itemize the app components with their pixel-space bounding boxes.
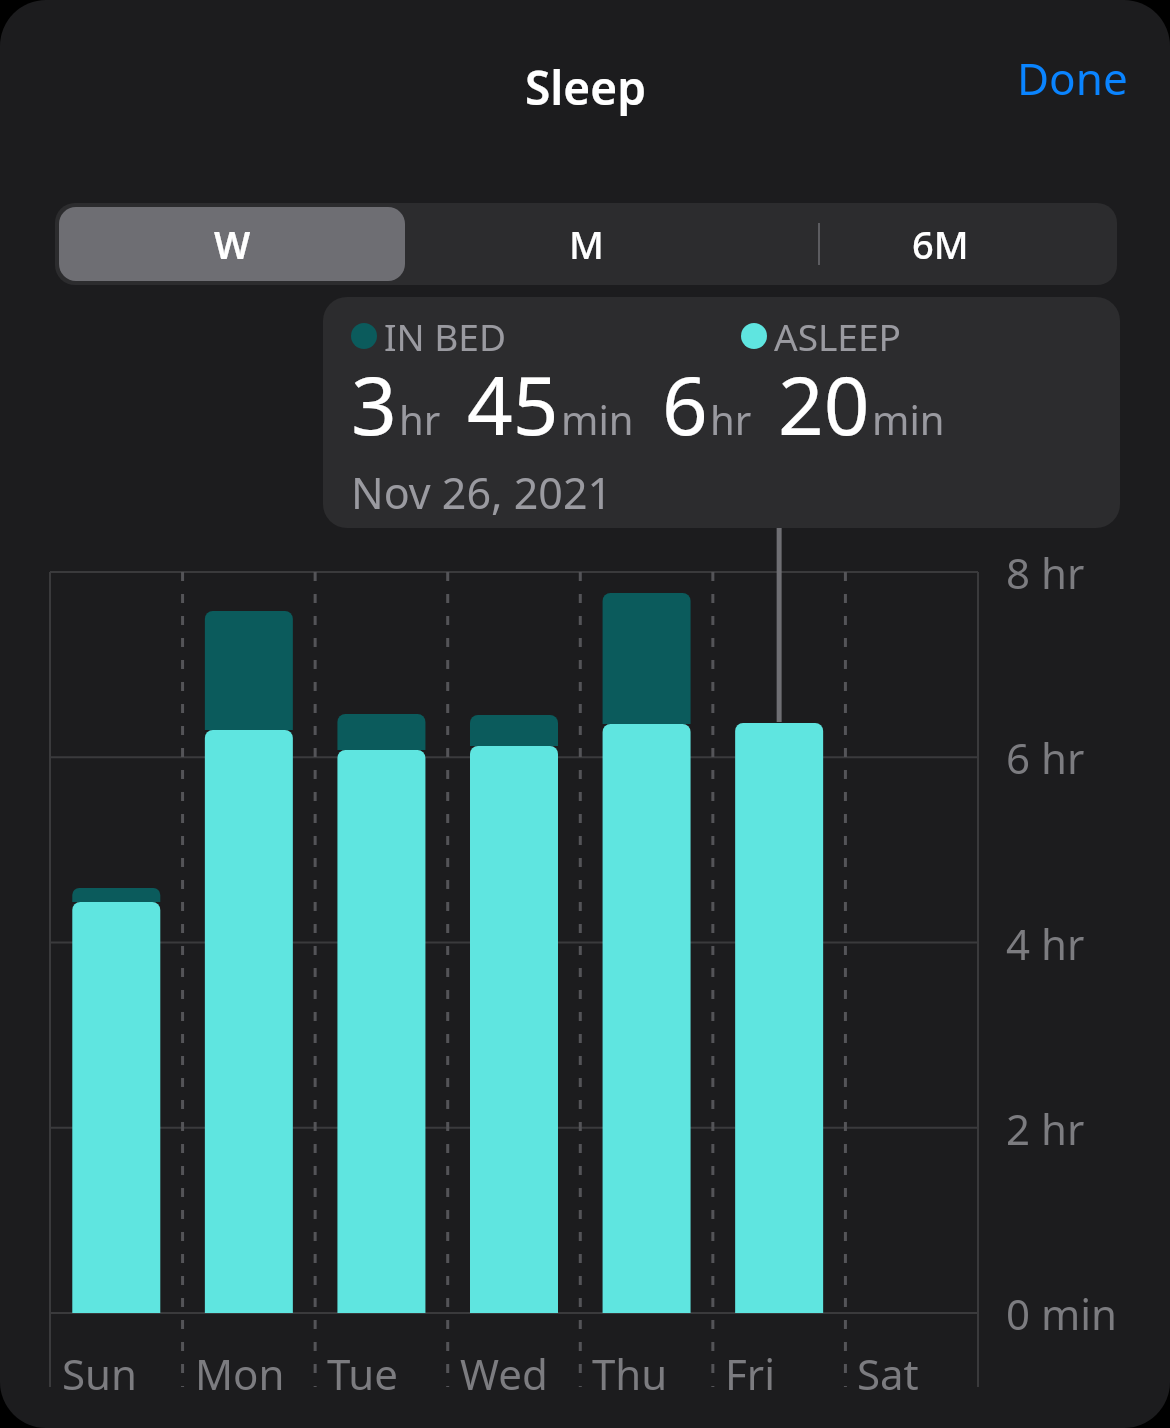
staticText: Fri	[725, 1345, 775, 1402]
staticText: IN BED	[384, 311, 506, 361]
staticText: 20	[778, 349, 870, 458]
staticText: hr	[710, 392, 752, 446]
staticText: Tue	[327, 1345, 398, 1402]
staticText: Sat	[857, 1345, 919, 1402]
staticText: 6	[662, 349, 708, 458]
staticText: Sun	[62, 1345, 137, 1402]
staticText: 6 hr	[1006, 729, 1085, 786]
staticText: 2 hr	[1006, 1100, 1085, 1157]
staticText: Nov 26, 2021	[351, 463, 613, 522]
button[interactable]: W	[59, 207, 405, 281]
staticText: 3	[351, 349, 397, 458]
staticText: Done	[1017, 48, 1128, 108]
staticText: min	[561, 392, 634, 446]
button[interactable]: IN BED	[323, 297, 1120, 528]
button[interactable]: M	[413, 207, 759, 281]
staticText: W	[214, 218, 251, 270]
staticText: M	[569, 218, 604, 270]
staticText: 45	[467, 349, 559, 458]
staticText: Thu	[592, 1345, 668, 1402]
staticText: ASLEEP	[774, 311, 901, 361]
staticText: min	[872, 392, 945, 446]
staticText: hr	[399, 392, 441, 446]
button[interactable]: Done	[1001, 36, 1144, 120]
staticText: Mon	[195, 1345, 285, 1402]
staticText: 0 min	[1006, 1285, 1118, 1342]
button[interactable]: 6M	[767, 207, 1113, 281]
staticText: 8 hr	[1006, 544, 1085, 601]
staticText: Sleep	[525, 56, 646, 119]
staticText: 4 hr	[1006, 915, 1085, 972]
staticText: Wed	[460, 1345, 548, 1402]
staticText: 6M	[912, 218, 969, 270]
